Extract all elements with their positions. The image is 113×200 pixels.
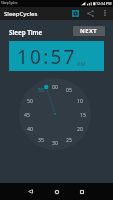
staticText: 35 [38, 136, 44, 143]
staticText: 55 [38, 86, 44, 93]
button[interactable]: Share [84, 7, 97, 20]
staticText: 30 [52, 139, 58, 146]
staticText: NEXT [80, 27, 98, 35]
button[interactable]: NEXT [73, 26, 105, 36]
staticText: 25 [66, 136, 72, 143]
staticText: 15 [80, 111, 86, 118]
button[interactable]: Back [22, 183, 39, 200]
staticText: PM [77, 60, 86, 67]
staticText: 50 [27, 97, 33, 104]
staticText: 40 [27, 125, 33, 132]
button[interactable]: Minute picker [19, 78, 91, 150]
button[interactable]: More options [99, 7, 111, 19]
button[interactable]: Home [48, 183, 65, 200]
button[interactable]: 10:57 [9, 41, 104, 71]
staticText: 20 [77, 125, 83, 132]
staticText: 12:34 PM [96, 1, 112, 6]
staticText: 10 [77, 97, 83, 104]
staticText: 10:57 [17, 44, 77, 70]
button[interactable]: Settings [69, 7, 82, 20]
button[interactable]: Recent apps [73, 183, 90, 200]
staticText: 45 [24, 111, 30, 118]
button[interactable]: Sleep Time [9, 28, 43, 36]
staticText: SleepCycles [4, 10, 38, 18]
staticText: SleepCycles [1, 1, 18, 5]
staticText: 05 [66, 86, 72, 93]
staticText: 00 [52, 83, 58, 90]
